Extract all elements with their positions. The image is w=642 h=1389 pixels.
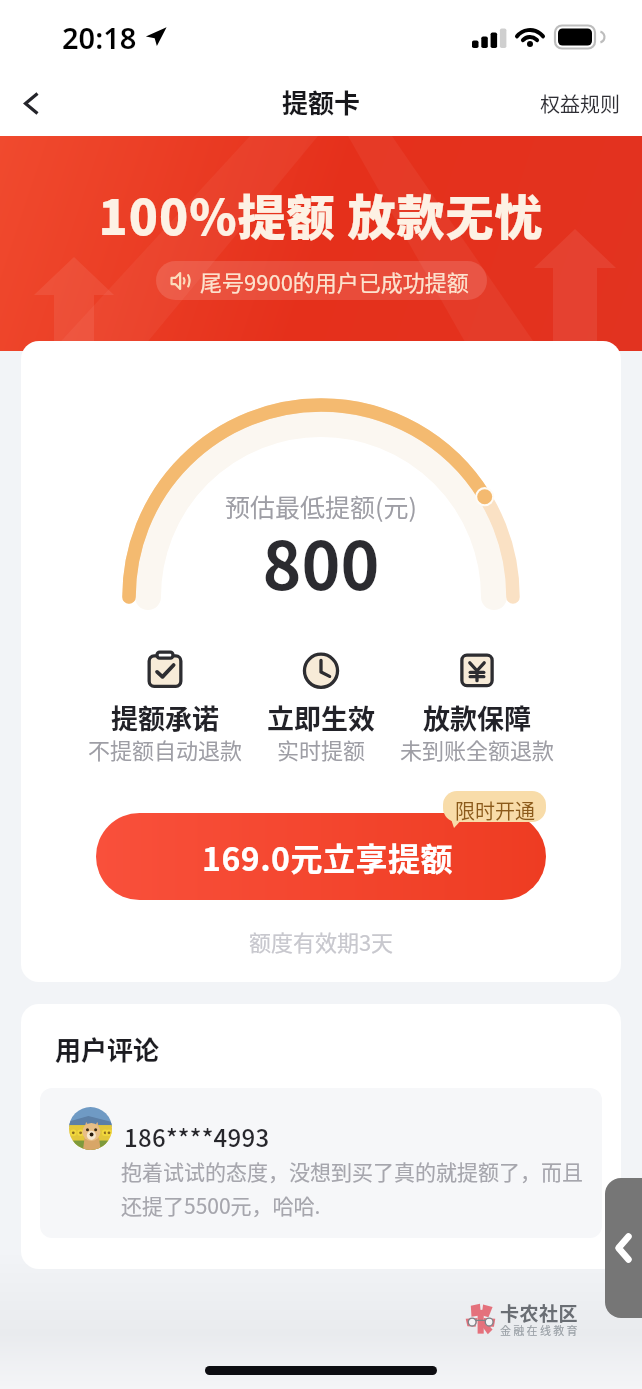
staticText: 限时开通	[455, 796, 535, 825]
staticText: 提额承诺	[87, 698, 243, 737]
staticText: 金融在线教育	[500, 1322, 580, 1338]
button[interactable]: Back	[0, 73, 62, 133]
staticText: 预估最低提额(元)	[21, 488, 621, 524]
staticText: 800	[21, 513, 621, 609]
staticText: 186****4993	[124, 1119, 270, 1154]
staticText: 权益规则	[540, 89, 620, 118]
button[interactable]: 权益规则	[518, 75, 642, 132]
staticText: 实时提额	[243, 733, 399, 765]
staticText: 尾号9900的用户已成功提额	[200, 265, 469, 297]
staticText: 100%提额 放款无忧	[0, 179, 642, 249]
button[interactable]: 186****4993	[40, 1088, 602, 1238]
staticText: 卡农社区	[500, 1299, 579, 1327]
staticText: 立即生效	[243, 698, 399, 737]
staticText: 抱着试试的态度，没想到买了真的就提额了，而且	[121, 1156, 583, 1186]
staticText: 放款保障	[399, 698, 555, 737]
button[interactable]: 尾号9900的用户已成功提额	[156, 261, 487, 300]
staticText: 未到账全额退款	[399, 733, 555, 765]
staticText: 额度有效期3天	[21, 925, 621, 957]
button[interactable]: 立即生效	[243, 651, 399, 779]
staticText: 169.0元立享提额	[202, 834, 453, 880]
staticText: 提额卡	[282, 83, 361, 121]
button[interactable]: 169.0元立享提额	[96, 813, 546, 900]
button[interactable]: Open side panel	[605, 1178, 642, 1318]
staticText: 用户评论	[55, 1030, 160, 1068]
staticText: 20:18	[62, 18, 137, 57]
staticText: 不提额自动退款	[87, 733, 243, 765]
button[interactable]: 放款保障	[399, 651, 555, 779]
staticText: 还提了5500元，哈哈.	[121, 1190, 321, 1220]
button[interactable]: 提额承诺	[87, 651, 243, 779]
